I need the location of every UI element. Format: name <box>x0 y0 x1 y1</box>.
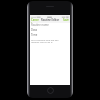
button[interactable]: Routine name <box>30 23 70 26</box>
staticText: Routine name <box>31 23 49 26</box>
button[interactable]: Save <box>63 18 70 23</box>
staticText: Save <box>63 18 69 22</box>
staticText: Days <box>31 28 38 31</box>
button[interactable]: Days <box>30 28 70 31</box>
button[interactable]: Cancel <box>30 18 38 23</box>
staticText: Routine Editor <box>41 18 60 22</box>
button[interactable]: Time <box>30 33 70 36</box>
staticText: Time <box>31 33 38 36</box>
staticText: Set a routine and we will remind you to … <box>31 38 59 44</box>
staticText: Cancel <box>31 18 39 23</box>
